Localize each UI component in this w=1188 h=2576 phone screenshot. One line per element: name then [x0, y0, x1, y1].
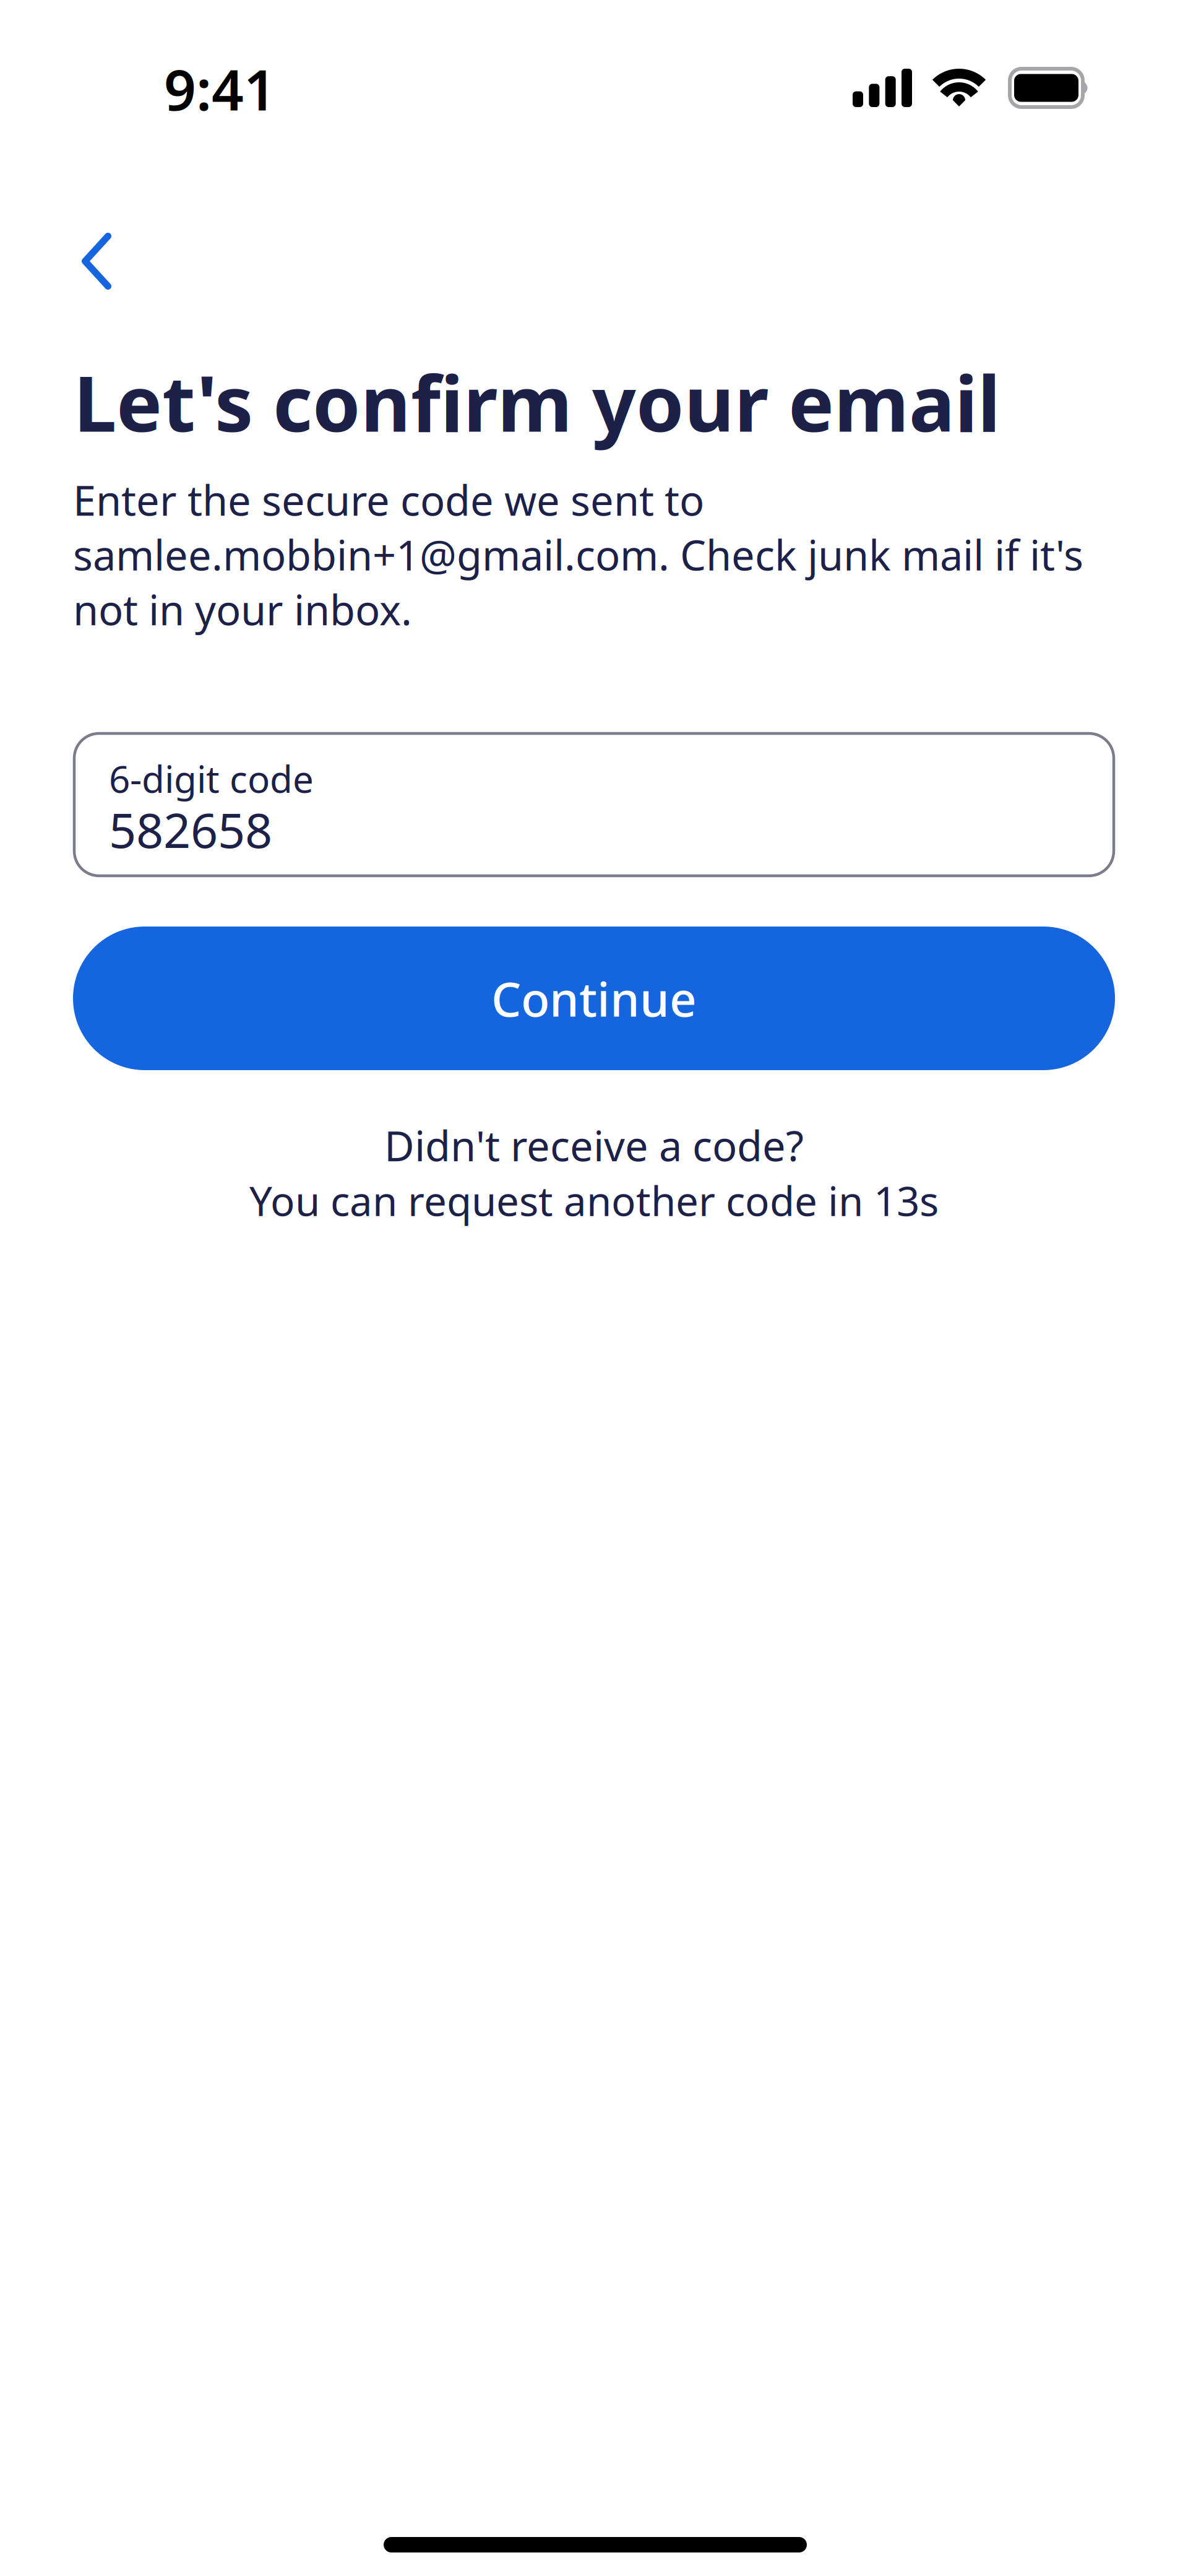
staticText: 6-digit code: [109, 754, 314, 803]
staticText: You can request another code in 13s: [249, 1173, 939, 1227]
staticText: Continue: [491, 967, 697, 1030]
staticText: Enter the secure code we sent to samlee.…: [73, 472, 1083, 637]
staticText: Didn't receive a code?: [384, 1118, 804, 1173]
staticText: 9:41: [164, 51, 276, 126]
button[interactable]: Continue: [73, 927, 1115, 1070]
button[interactable]: Back: [59, 214, 134, 308]
staticText: 582658: [109, 798, 272, 861]
button[interactable]: 6-digit code: [74, 733, 1114, 876]
staticText: Let's confirm your email: [74, 351, 1001, 453]
